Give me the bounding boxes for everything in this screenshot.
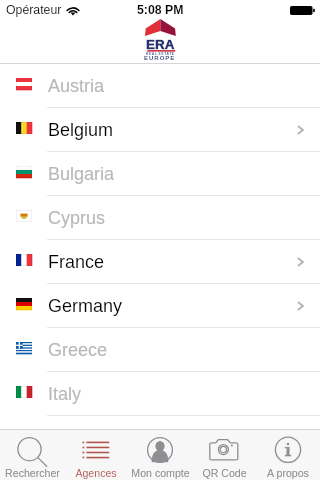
button[interactable]: Rechercher — [0, 430, 64, 480]
staticText: Germany — [48, 296, 123, 316]
staticText: REAL ESTATE — [146, 52, 175, 56]
staticText: QR Code — [202, 467, 247, 479]
button[interactable]: QR Code — [192, 430, 256, 480]
staticText: Cyprus — [48, 208, 106, 228]
button[interactable]: Greece — [0, 328, 320, 372]
button[interactable]: France — [0, 240, 320, 284]
staticText: Belgium — [48, 120, 114, 140]
staticText: EUROPE — [144, 55, 176, 62]
staticText: Austria — [48, 76, 105, 96]
staticText: Greece — [48, 340, 108, 360]
button[interactable]: Cyprus — [0, 196, 320, 240]
staticText: Italy — [48, 384, 82, 404]
button[interactable]: Mon compte — [128, 430, 192, 480]
staticText: Mon compte — [131, 467, 190, 479]
staticText: 5:08 PM — [137, 3, 184, 17]
button[interactable]: Belgium — [0, 108, 320, 152]
staticText: Agences — [75, 467, 117, 479]
staticText: A propos — [267, 467, 309, 479]
button[interactable]: Austria — [0, 64, 320, 108]
staticText: Rechercher — [5, 467, 60, 479]
staticText: Bulgaria — [48, 164, 115, 184]
button[interactable]: Germany — [0, 284, 320, 328]
button[interactable]: A propos — [256, 430, 320, 480]
staticText: ERA — [146, 37, 175, 52]
button[interactable]: Italy — [0, 372, 320, 416]
staticText: Opérateur — [6, 3, 62, 17]
button[interactable]: Bulgaria — [0, 152, 320, 196]
staticText: France — [48, 252, 105, 272]
button[interactable]: Agences — [64, 430, 128, 480]
